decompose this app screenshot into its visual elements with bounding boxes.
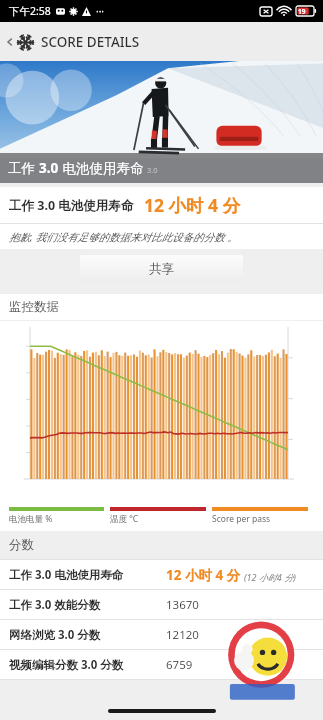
other: Back: [5, 37, 15, 47]
button[interactable]: Back: [0, 22, 323, 61]
staticText: 6759: [166, 657, 193, 673]
staticText: 视频编辑分数 3.0 分数: [9, 657, 124, 673]
staticText: 工作 3.0 电池使用寿命: [9, 567, 124, 583]
staticText: 温度 °C: [110, 513, 139, 525]
staticText: 工作 3.0 电池使用寿命: [9, 197, 134, 214]
staticText: 13670: [166, 597, 199, 613]
staticText: 下午2:58: [9, 4, 51, 18]
staticText: 12 小时 4 分: [144, 193, 241, 217]
staticText: 监控数据: [9, 299, 59, 315]
staticText: 工作: [8, 159, 39, 177]
staticText: (12 小时4 分): [244, 571, 296, 583]
button[interactable]: 网络浏览 3.0 分数: [0, 620, 323, 650]
button[interactable]: 工作 3.0 效能分数: [0, 590, 323, 620]
button[interactable]: 视频编辑分数 3.0 分数: [0, 650, 323, 680]
staticText: Score per pass: [212, 513, 271, 525]
button[interactable]: 工作 3.0 电池使用寿命: [0, 560, 323, 590]
staticText: 19: [298, 7, 306, 16]
staticText: 12 小时 4 分: [166, 566, 241, 584]
staticText: 3.0: [39, 159, 59, 177]
staticText: 网络浏览 3.0 分数: [9, 627, 101, 643]
staticText: 分数: [9, 537, 34, 553]
staticText: ···: [96, 4, 105, 18]
staticText: 3.0: [147, 165, 158, 175]
staticText: SCORE DETAILS: [41, 33, 140, 51]
staticText: 电池使用寿命: [59, 159, 144, 177]
staticText: 电池电量 %: [9, 513, 53, 525]
staticText: 工作 3.0 效能分数: [9, 597, 101, 613]
button[interactable]: 共享: [80, 255, 243, 283]
staticText: 抱歉, 我们没有足够的数据来对比此设备的分数 。: [9, 230, 238, 244]
staticText: 12120: [166, 627, 199, 643]
staticText: 共享: [149, 261, 174, 277]
